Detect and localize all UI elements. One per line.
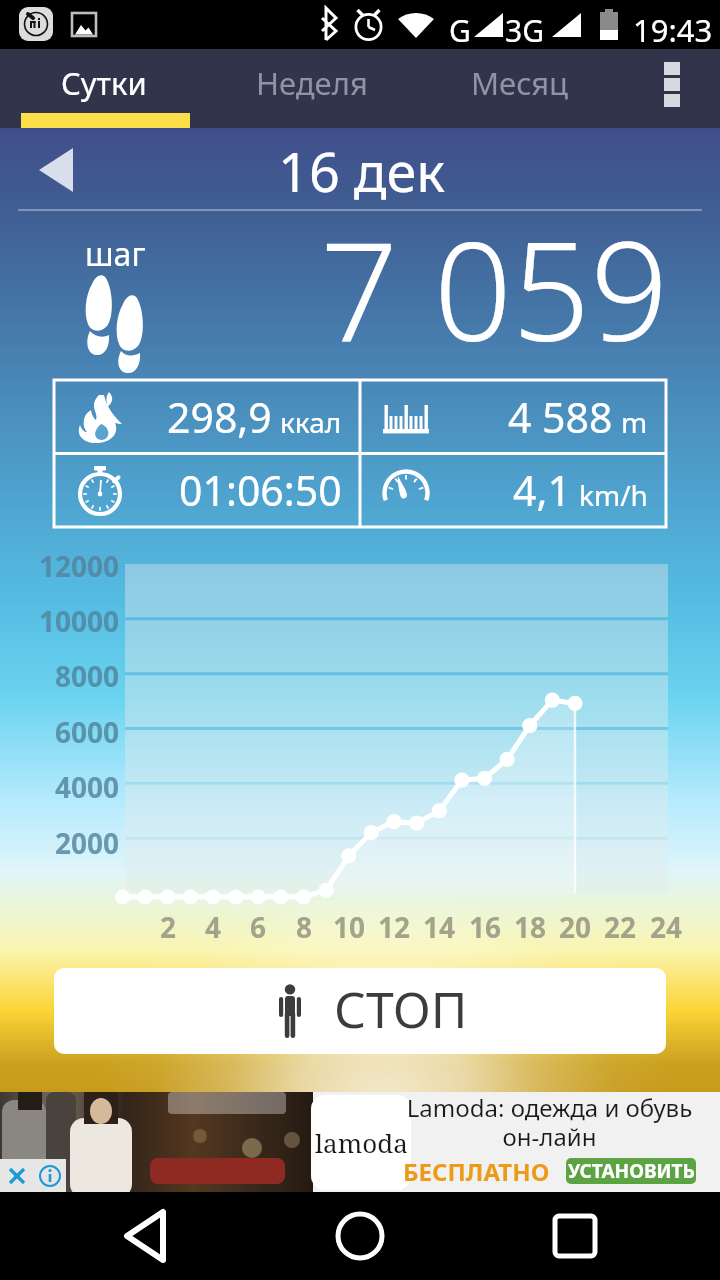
staticText: lamoda bbox=[315, 1125, 408, 1160]
staticText: 2 bbox=[142, 908, 194, 946]
staticText: 20 bbox=[549, 908, 601, 946]
button[interactable]: Recent apps bbox=[505, 1192, 645, 1280]
button[interactable]: СТОП bbox=[54, 968, 666, 1054]
staticText: 22 bbox=[594, 908, 646, 946]
staticText: БЕСПЛАТНО bbox=[403, 1155, 550, 1187]
staticText: 14 bbox=[413, 908, 465, 946]
staticText: 2000 bbox=[0, 824, 119, 862]
staticText: 19:43 bbox=[633, 9, 713, 51]
staticText: Месяц bbox=[471, 62, 569, 104]
staticText: 8000 bbox=[0, 657, 119, 695]
button[interactable]: Сутки bbox=[0, 49, 208, 128]
button[interactable]: Back bbox=[75, 1192, 215, 1280]
button[interactable]: Previous day bbox=[20, 140, 92, 200]
staticText: шаг bbox=[85, 232, 146, 276]
staticText: 8 bbox=[278, 908, 330, 946]
staticText: 24 bbox=[640, 908, 692, 946]
staticText: УСТАНОВИТЬ bbox=[568, 1158, 695, 1184]
staticText: СТОП bbox=[334, 975, 468, 1043]
button[interactable]: 4,1 bbox=[360, 453, 666, 527]
staticText: 18 bbox=[504, 908, 556, 946]
staticText: 4000 bbox=[0, 768, 119, 806]
staticText: m bbox=[621, 403, 648, 441]
staticText: 4,1 bbox=[513, 462, 571, 518]
staticText: 6000 bbox=[0, 713, 119, 751]
button[interactable]: 298,9 bbox=[54, 380, 360, 454]
staticText: Lamoda: одежда и обувь он-лайн bbox=[402, 1091, 697, 1153]
staticText: 16 bbox=[459, 908, 511, 946]
staticText: Неделя bbox=[256, 62, 368, 104]
staticText: ккал bbox=[280, 403, 342, 441]
button[interactable]: lamoda bbox=[0, 1092, 720, 1192]
staticText: 16 дек bbox=[278, 134, 446, 208]
staticText: 12 bbox=[368, 908, 420, 946]
staticText: 298,9 bbox=[167, 389, 272, 445]
staticText: 10 bbox=[323, 908, 375, 946]
staticText: 4 588 bbox=[508, 389, 613, 445]
staticText: 01:06:50 bbox=[179, 462, 342, 518]
staticText: G bbox=[449, 10, 471, 51]
staticText: 10000 bbox=[0, 602, 119, 640]
staticText: 12000 bbox=[0, 547, 119, 585]
button[interactable]: More options bbox=[624, 49, 720, 128]
button[interactable]: 01:06:50 bbox=[54, 453, 360, 527]
staticText: 4 bbox=[187, 908, 239, 946]
staticText: 6 bbox=[232, 908, 284, 946]
staticText: 3G bbox=[505, 10, 544, 51]
staticText: km/h bbox=[579, 476, 648, 514]
staticText: Сутки bbox=[61, 62, 147, 104]
button[interactable]: Неделя bbox=[208, 49, 416, 128]
button[interactable]: Home bbox=[290, 1192, 430, 1280]
button[interactable]: 4 588 bbox=[360, 380, 666, 454]
button[interactable]: Месяц bbox=[416, 49, 624, 128]
staticText: 7 059 bbox=[320, 195, 669, 363]
